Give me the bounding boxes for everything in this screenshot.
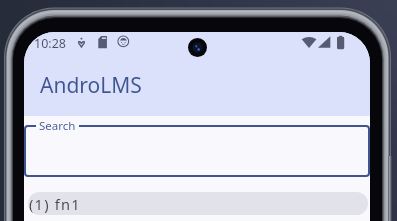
staticText: (1) fn1 [29,194,81,214]
staticText: 10:28 [34,35,66,52]
other: Power button [388,156,392,221]
button[interactable] [24,125,370,177]
button[interactable]: (1) fn1 [28,192,368,215]
staticText: AndroLMS [40,71,142,100]
staticText: Search [39,118,76,134]
